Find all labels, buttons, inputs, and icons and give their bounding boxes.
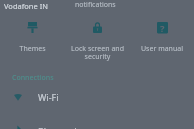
staticText: Vodafone IN: [4, 1, 48, 11]
button[interactable]: Bluetooth: [0, 118, 194, 129]
staticText: ?: [160, 22, 165, 34]
staticText: Bluetooth: [38, 125, 80, 129]
button[interactable]: User manual: [130, 18, 194, 64]
staticText: Lock screen and security: [71, 44, 124, 61]
button[interactable]: Wi-Fi: [0, 84, 194, 110]
staticText: notifications: [75, 0, 116, 10]
staticText: Wi-Fi: [38, 91, 59, 103]
button[interactable]: Themes: [0, 18, 64, 64]
staticText: User manual: [141, 44, 183, 54]
staticText: Themes: [19, 44, 46, 54]
staticText: Connections: [12, 73, 54, 83]
button[interactable]: Lock screen and security: [65, 18, 129, 64]
